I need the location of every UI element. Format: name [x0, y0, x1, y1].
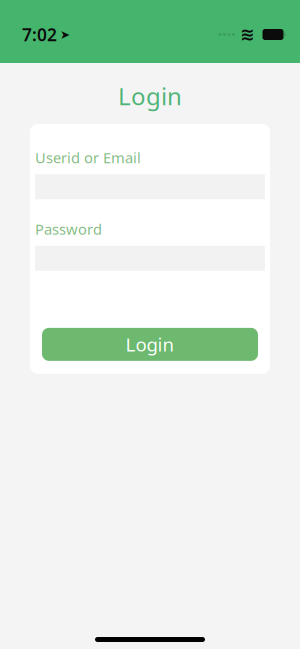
staticText: ➤	[60, 28, 70, 41]
staticText: 7:02	[22, 23, 57, 46]
staticText: Login	[118, 80, 182, 112]
button[interactable]: Login	[42, 328, 258, 361]
staticText: ≋	[240, 25, 255, 44]
staticText: Password	[35, 219, 102, 239]
staticText: Userid or Email	[35, 148, 141, 167]
staticText: Login	[125, 332, 174, 357]
